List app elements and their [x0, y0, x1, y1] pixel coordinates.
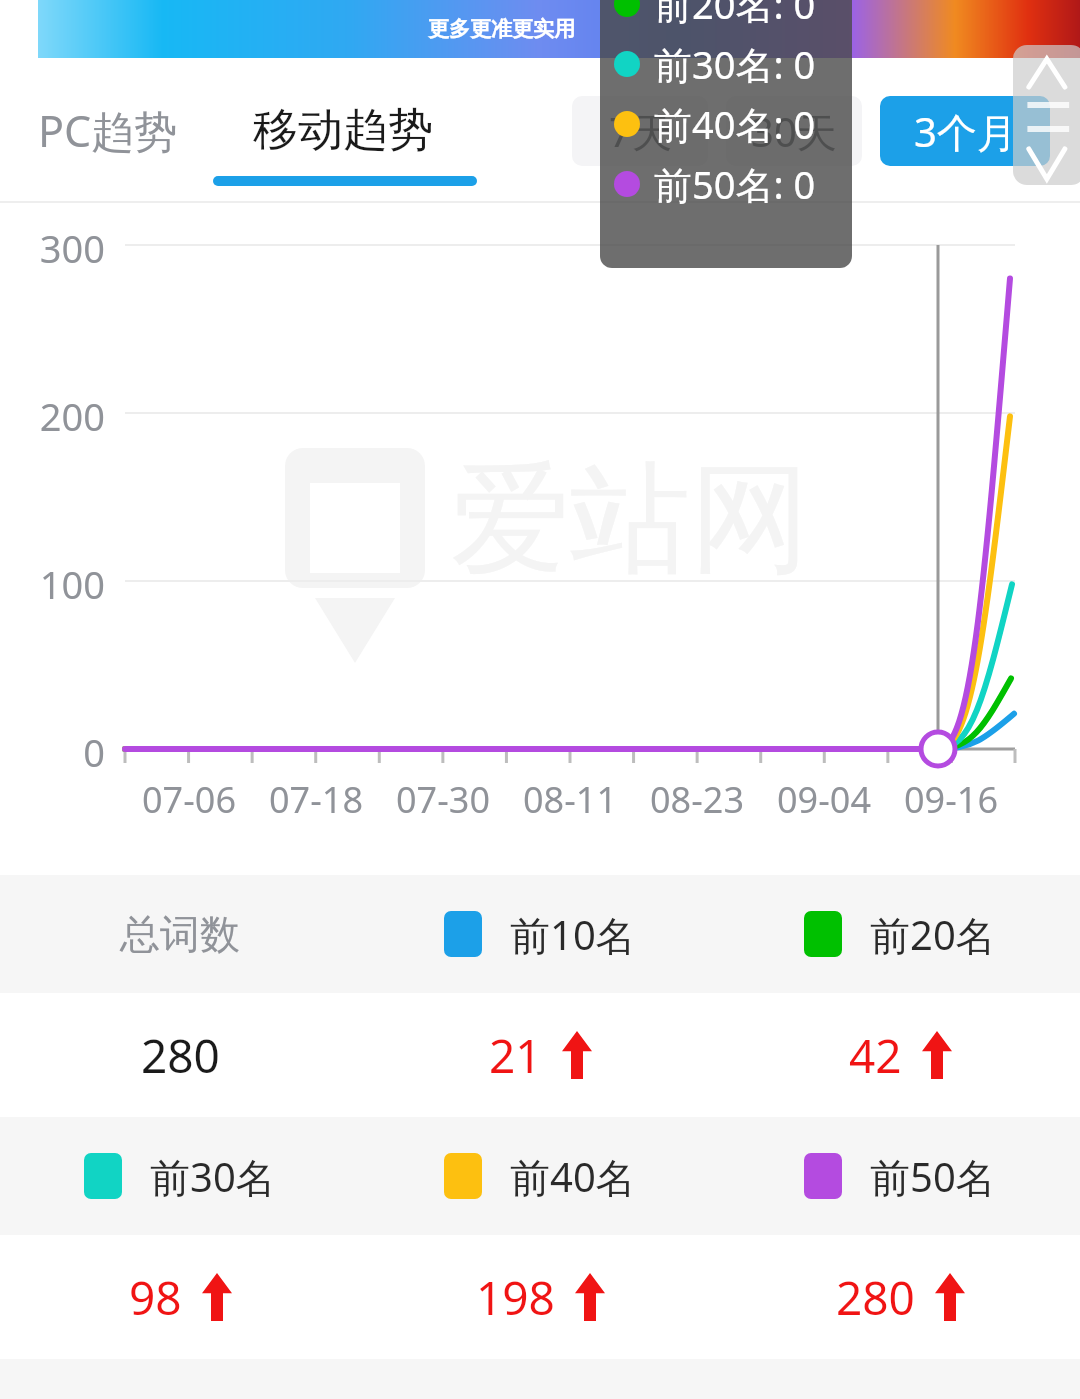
staticText: 7天 [609, 104, 672, 159]
staticText: 前50名 [870, 1149, 996, 1204]
button[interactable]: 198 [360, 1235, 720, 1359]
staticText: 前20名: 0 [654, 0, 816, 30]
button[interactable]: 前30名 [0, 1117, 360, 1235]
staticText: 总词数 [120, 909, 240, 959]
button[interactable]: 30天 [726, 96, 862, 166]
staticText: 前20名 [870, 907, 996, 962]
button[interactable]: 前50名 [720, 1117, 1080, 1235]
staticText: 198 [476, 1266, 555, 1329]
button[interactable]: 280 [720, 1235, 1080, 1359]
button[interactable]: 总词数 [0, 875, 360, 993]
button[interactable]: Scroll [1013, 45, 1080, 185]
staticText: 前10名 [510, 907, 636, 962]
staticText: 08-11 [510, 775, 630, 824]
button[interactable]: 前20名 [720, 875, 1080, 993]
staticText: 21 [489, 1024, 542, 1087]
staticText: 09-04 [764, 775, 884, 824]
button[interactable]: 3个月 [880, 96, 1050, 166]
button[interactable]: 42 [720, 993, 1080, 1117]
staticText: 100 [0, 558, 105, 610]
staticText: PC趋势 [38, 101, 178, 160]
staticText: 200 [0, 390, 105, 442]
button[interactable]: 98 [0, 1235, 360, 1359]
staticText: 98 [129, 1266, 182, 1329]
staticText: 08-23 [637, 775, 757, 824]
staticText: 30天 [751, 104, 837, 159]
staticText: 前40名: 0 [654, 98, 816, 150]
button[interactable]: 21 [360, 993, 720, 1117]
button[interactable]: 7天 [572, 96, 708, 166]
staticText: 前40名 [510, 1149, 636, 1204]
staticText: 更多更准更实用 [428, 16, 575, 42]
staticText: 0 [0, 726, 105, 778]
button[interactable]: 移动趋势 [253, 88, 433, 173]
staticText: 07-06 [129, 775, 249, 824]
staticText: 300 [0, 222, 105, 274]
staticText: 09-16 [891, 775, 1011, 824]
button[interactable]: 280 [0, 993, 360, 1117]
staticText: 爱站网 [450, 444, 810, 595]
staticText: 前30名: 0 [654, 38, 816, 90]
staticText: 前50名: 0 [654, 158, 816, 210]
button[interactable]: 前40名 [360, 1117, 720, 1235]
staticText: 42 [849, 1024, 902, 1087]
staticText: 3个月 [914, 104, 1017, 159]
staticText: 280 [836, 1266, 915, 1329]
staticText: 280 [141, 1024, 220, 1087]
staticText: 移动趋势 [253, 102, 433, 159]
button[interactable]: 前10名 [360, 875, 720, 993]
staticText: 07-30 [383, 775, 503, 824]
staticText: 前30名 [150, 1149, 276, 1204]
button[interactable]: PC趋势 [38, 87, 178, 174]
staticText: 07-18 [256, 775, 376, 824]
